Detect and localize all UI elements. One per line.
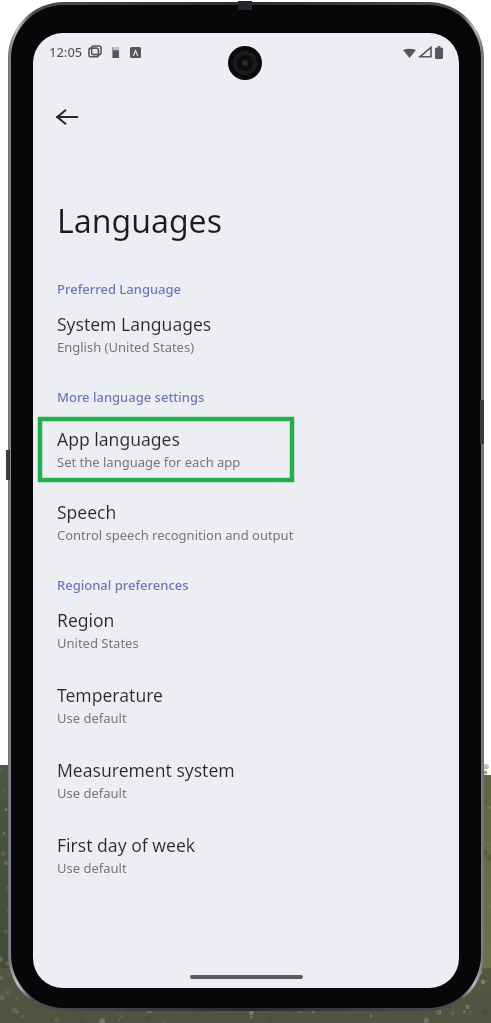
staticText: English (United States) — [57, 338, 195, 356]
button[interactable]: First day of week — [33, 831, 459, 879]
staticText: Use default — [57, 784, 127, 802]
staticText: United States — [57, 634, 139, 652]
staticText: Speech — [57, 500, 117, 524]
staticText: Use default — [57, 859, 127, 877]
staticText: Use default — [57, 709, 127, 727]
button[interactable]: Temperature — [33, 681, 459, 729]
staticText: 12:05 — [49, 43, 83, 61]
staticText: First day of week — [57, 833, 196, 857]
staticText: Measurement system — [57, 758, 235, 782]
staticText: More language settings — [57, 388, 205, 406]
button[interactable]: Speech — [33, 498, 459, 546]
staticText: System Languages — [57, 312, 212, 336]
button[interactable]: Region — [33, 606, 459, 654]
staticText: App languages — [57, 427, 180, 451]
button[interactable]: Measurement system — [33, 756, 459, 804]
staticText: Temperature — [57, 683, 163, 707]
staticText: Regional preferences — [57, 576, 189, 594]
button[interactable]: System Languages — [33, 310, 459, 358]
staticText: Languages — [57, 199, 222, 243]
staticText: Region — [57, 608, 115, 632]
button[interactable]: App languages — [38, 417, 294, 482]
staticText: Preferred Language — [57, 280, 182, 298]
staticText: Set the language for each app — [57, 453, 241, 471]
button[interactable]: Back — [43, 93, 91, 141]
staticText: Control speech recognition and output — [57, 526, 294, 544]
